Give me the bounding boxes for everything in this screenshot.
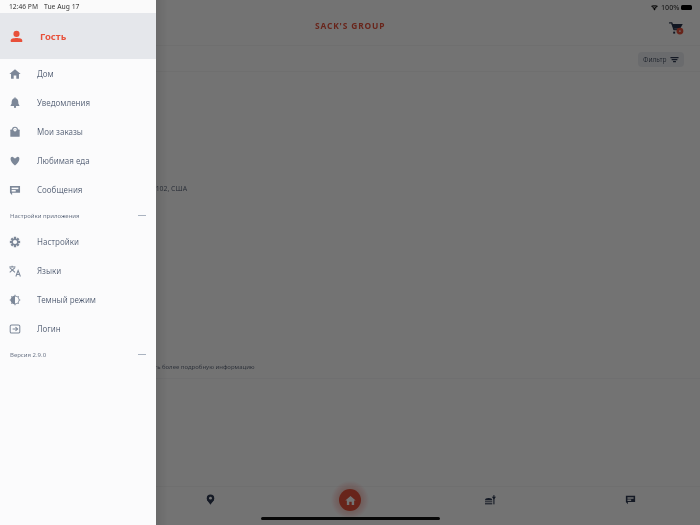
button[interactable]: Close navigation drawer (0, 0, 700, 525)
staticText: Версия 2.9.0 (10, 351, 47, 359)
staticText: Tue Aug 17 (44, 2, 80, 11)
staticText: SACK'S GROUP (315, 20, 386, 31)
button[interactable]: Гость (0, 13, 156, 59)
button[interactable]: Cart (669, 21, 683, 35)
button[interactable]: Мои заказы (0, 117, 156, 146)
button[interactable]: Food (420, 486, 560, 513)
staticText: 12:46 PM (9, 2, 39, 11)
button[interactable]: Фильтр (638, 52, 684, 67)
staticText: Гость (40, 30, 67, 43)
staticText: Темный режим (37, 294, 97, 305)
staticText: Нажмите на ресторан, чтобы увидеть более… (51, 363, 255, 371)
button[interactable]: Дом (0, 59, 156, 88)
button[interactable]: Любимая еда (0, 146, 156, 175)
button[interactable]: Chat (560, 486, 700, 513)
staticText: Уведомления (37, 97, 91, 108)
staticText: Дом (37, 68, 54, 79)
staticText: Языки (37, 265, 62, 276)
staticText: Мои заказы (37, 126, 83, 137)
button[interactable]: Логин (0, 314, 156, 343)
staticText: Логин (37, 323, 61, 334)
staticText: Фильтр (643, 55, 667, 64)
button[interactable]: Сообщения (0, 175, 156, 204)
button[interactable]: Уведомления (0, 88, 156, 117)
staticText: Сообщения (37, 184, 83, 195)
staticText: Настройки приложения (10, 212, 80, 220)
button[interactable]: Home (339, 489, 361, 511)
staticText: Настройки (37, 236, 79, 247)
button[interactable]: Темный режим (0, 285, 156, 314)
staticText: 100% (661, 2, 680, 12)
button[interactable]: Location (140, 486, 280, 513)
button[interactable]: Настройки (0, 227, 156, 256)
staticText: Любимая еда (37, 155, 90, 166)
staticText: Сан-Франциско, Калифорния 94102, США (48, 184, 188, 193)
button[interactable]: Языки (0, 256, 156, 285)
